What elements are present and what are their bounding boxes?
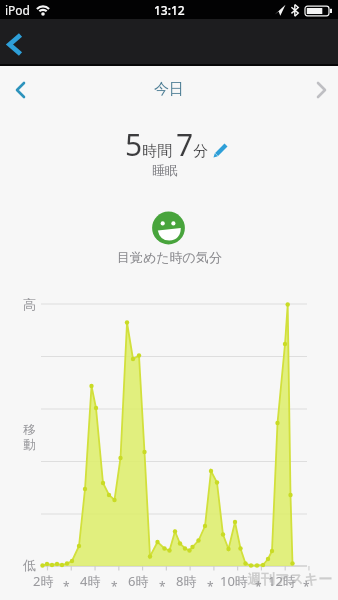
staticText: * (207, 578, 214, 594)
staticText: 12時 (268, 572, 296, 590)
button[interactable] (0, 73, 34, 107)
staticText: 2時 (33, 572, 54, 590)
button[interactable] (152, 211, 186, 245)
staticText: 高 (23, 296, 36, 312)
staticText: 週刊アスキー (247, 571, 332, 589)
staticText: * (159, 578, 166, 594)
staticText: 8時 (176, 572, 197, 590)
staticText: 13:12 (154, 2, 185, 18)
staticText: 6時 (128, 572, 149, 590)
button[interactable] (2, 29, 32, 61)
staticText: 移 動 (23, 422, 36, 453)
staticText: 低 (23, 557, 36, 573)
button[interactable] (304, 73, 338, 107)
staticText: * (303, 578, 310, 594)
staticText: * (255, 578, 262, 594)
button[interactable]: 5時間 7分 (125, 124, 229, 165)
staticText: 睡眠 (152, 162, 178, 178)
button[interactable]: 今日 (154, 80, 184, 99)
staticText: iPod (5, 2, 30, 18)
staticText: 4時 (80, 572, 101, 590)
staticText: 5時間 7分 (125, 124, 209, 165)
staticText: 目覚めた時の気分 (117, 249, 222, 265)
staticText: 10時 (220, 572, 248, 590)
staticText: * (111, 578, 118, 594)
staticText: * (63, 578, 70, 594)
